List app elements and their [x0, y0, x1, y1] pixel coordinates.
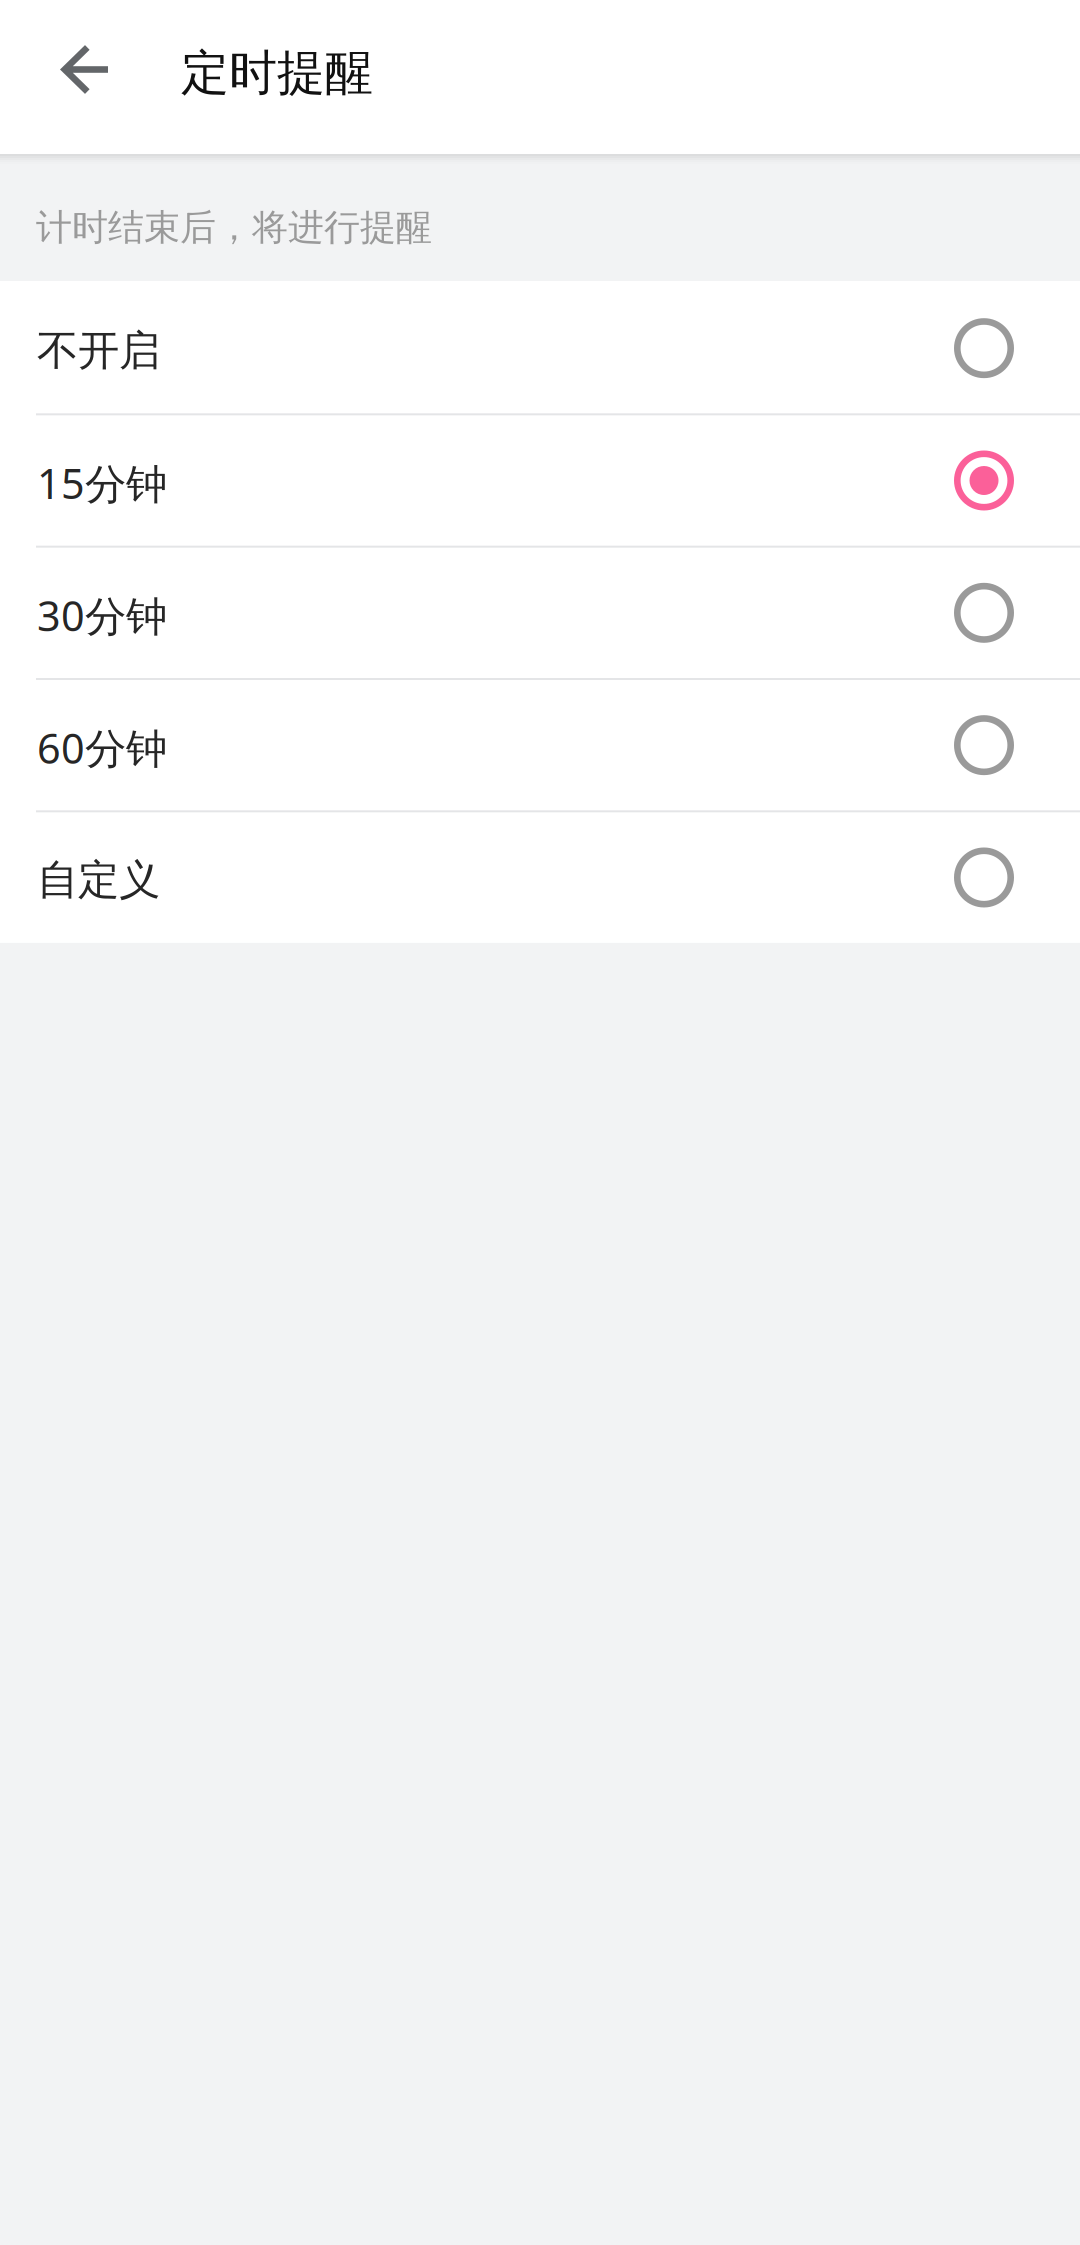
button[interactable]: 15分钟 — [0, 413, 1080, 546]
button[interactable]: 不开启 — [0, 281, 1080, 413]
button[interactable]: 30分钟 — [0, 546, 1080, 678]
staticText: 15分钟 — [37, 456, 167, 510]
staticText: 自定义 — [37, 855, 160, 905]
staticText: 不开启 — [37, 325, 160, 376]
staticText: 定时提醒 — [181, 43, 373, 102]
staticText: 60分钟 — [37, 720, 167, 775]
staticText: 计时结束后，将进行提醒 — [36, 205, 432, 250]
button[interactable]: 自定义 — [0, 810, 1080, 943]
button[interactable]: Back — [0, 0, 181, 139]
button[interactable]: 60分钟 — [0, 678, 1080, 810]
staticText: 30分钟 — [37, 588, 167, 643]
